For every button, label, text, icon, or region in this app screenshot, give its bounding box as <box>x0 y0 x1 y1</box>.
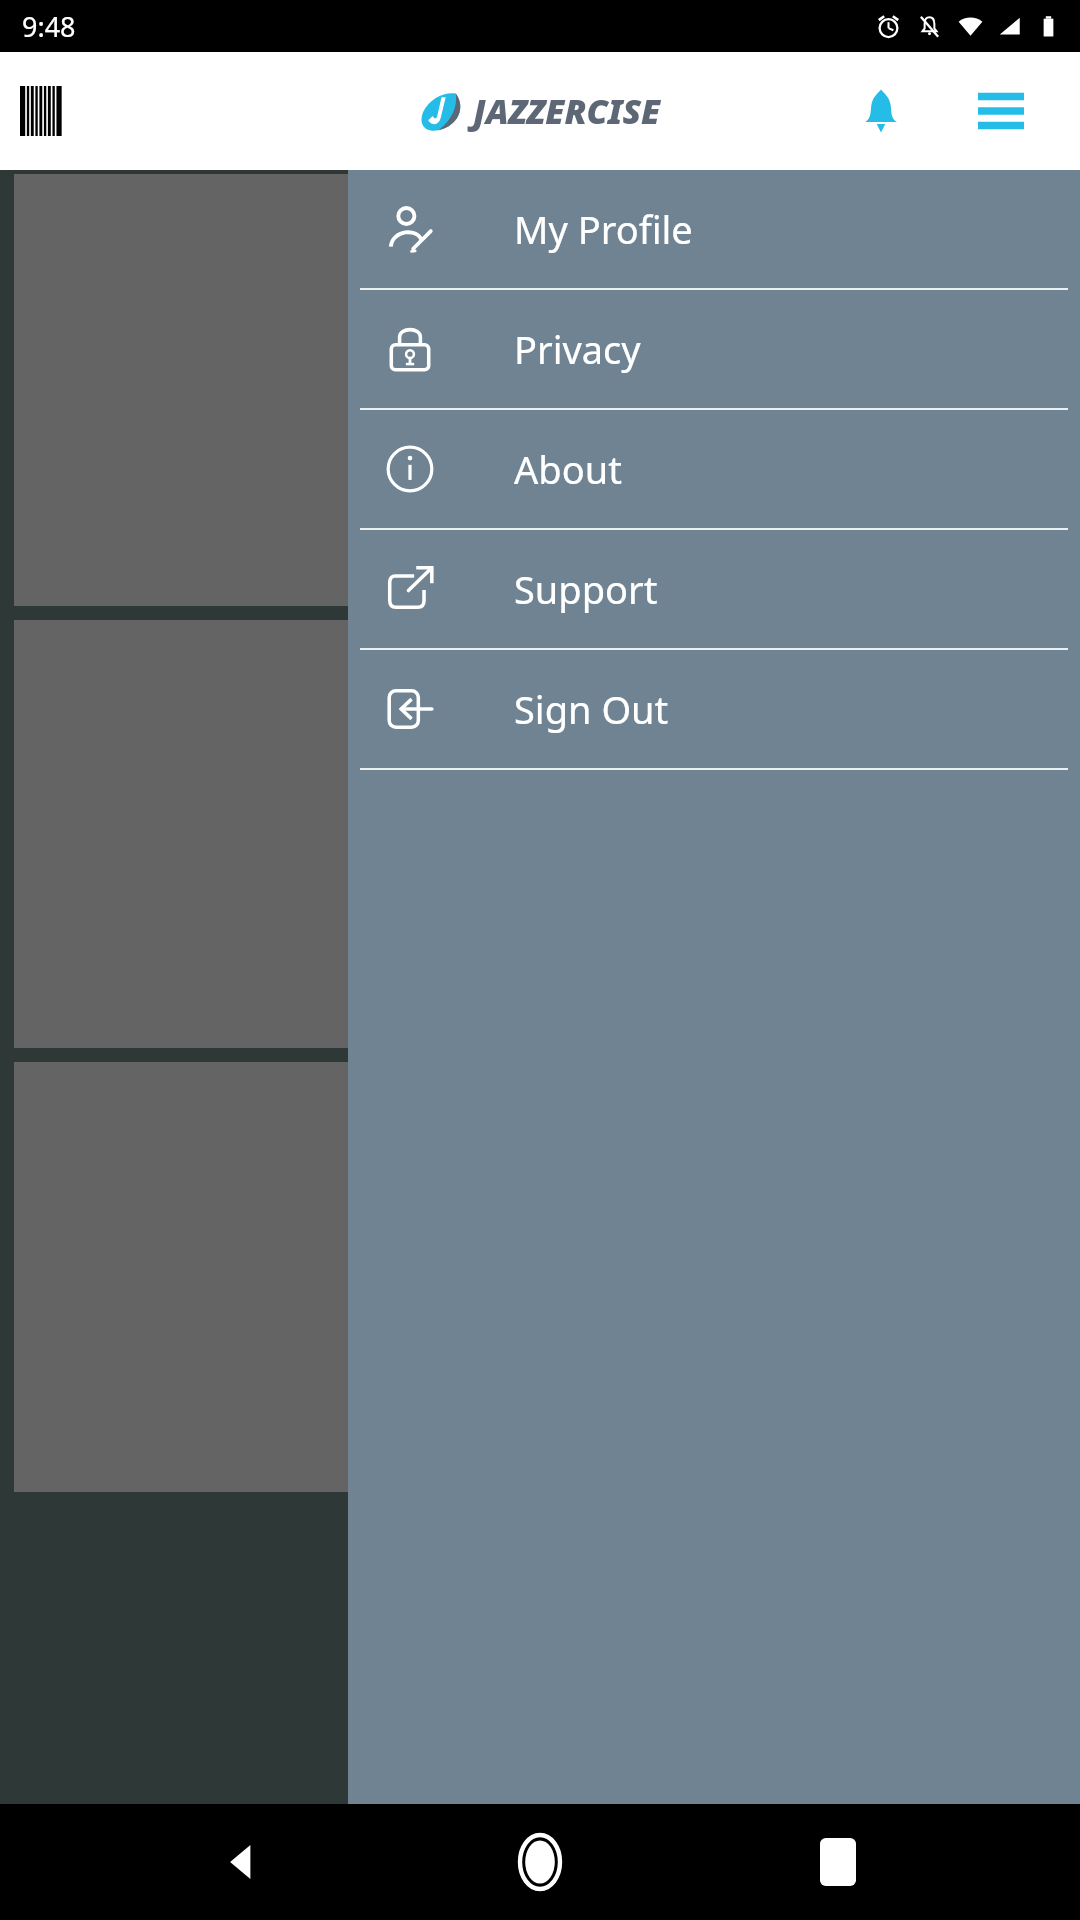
button[interactable]: Back <box>188 1807 298 1917</box>
button[interactable]: My Profile <box>348 170 1080 288</box>
button[interactable]: Sign Out <box>348 650 1080 768</box>
staticText: Locations <box>456 488 625 536</box>
button[interactable]: Recent apps <box>783 1807 893 1917</box>
button[interactable]: Notifications <box>840 70 922 152</box>
staticText: JAZZERCISE <box>473 88 661 134</box>
staticText: 9:48 <box>22 8 76 45</box>
staticText: About <box>514 443 622 495</box>
button[interactable]: Support <box>348 530 1080 648</box>
staticText: Sign Out <box>514 683 669 735</box>
staticText: Support <box>514 563 658 615</box>
button[interactable]: Challenges <box>14 1062 1066 1492</box>
button[interactable]: Home <box>485 1807 595 1917</box>
button[interactable]: Locations <box>14 174 1066 606</box>
staticText: My Profile <box>514 203 693 255</box>
staticText: Privacy <box>514 323 641 375</box>
button[interactable]: Privacy <box>348 290 1080 408</box>
button[interactable]: About <box>348 410 1080 528</box>
button[interactable]: Connected Apps <box>14 620 1066 1048</box>
button[interactable]: Menu <box>960 70 1042 152</box>
button[interactable]: Scan barcode <box>8 73 84 149</box>
